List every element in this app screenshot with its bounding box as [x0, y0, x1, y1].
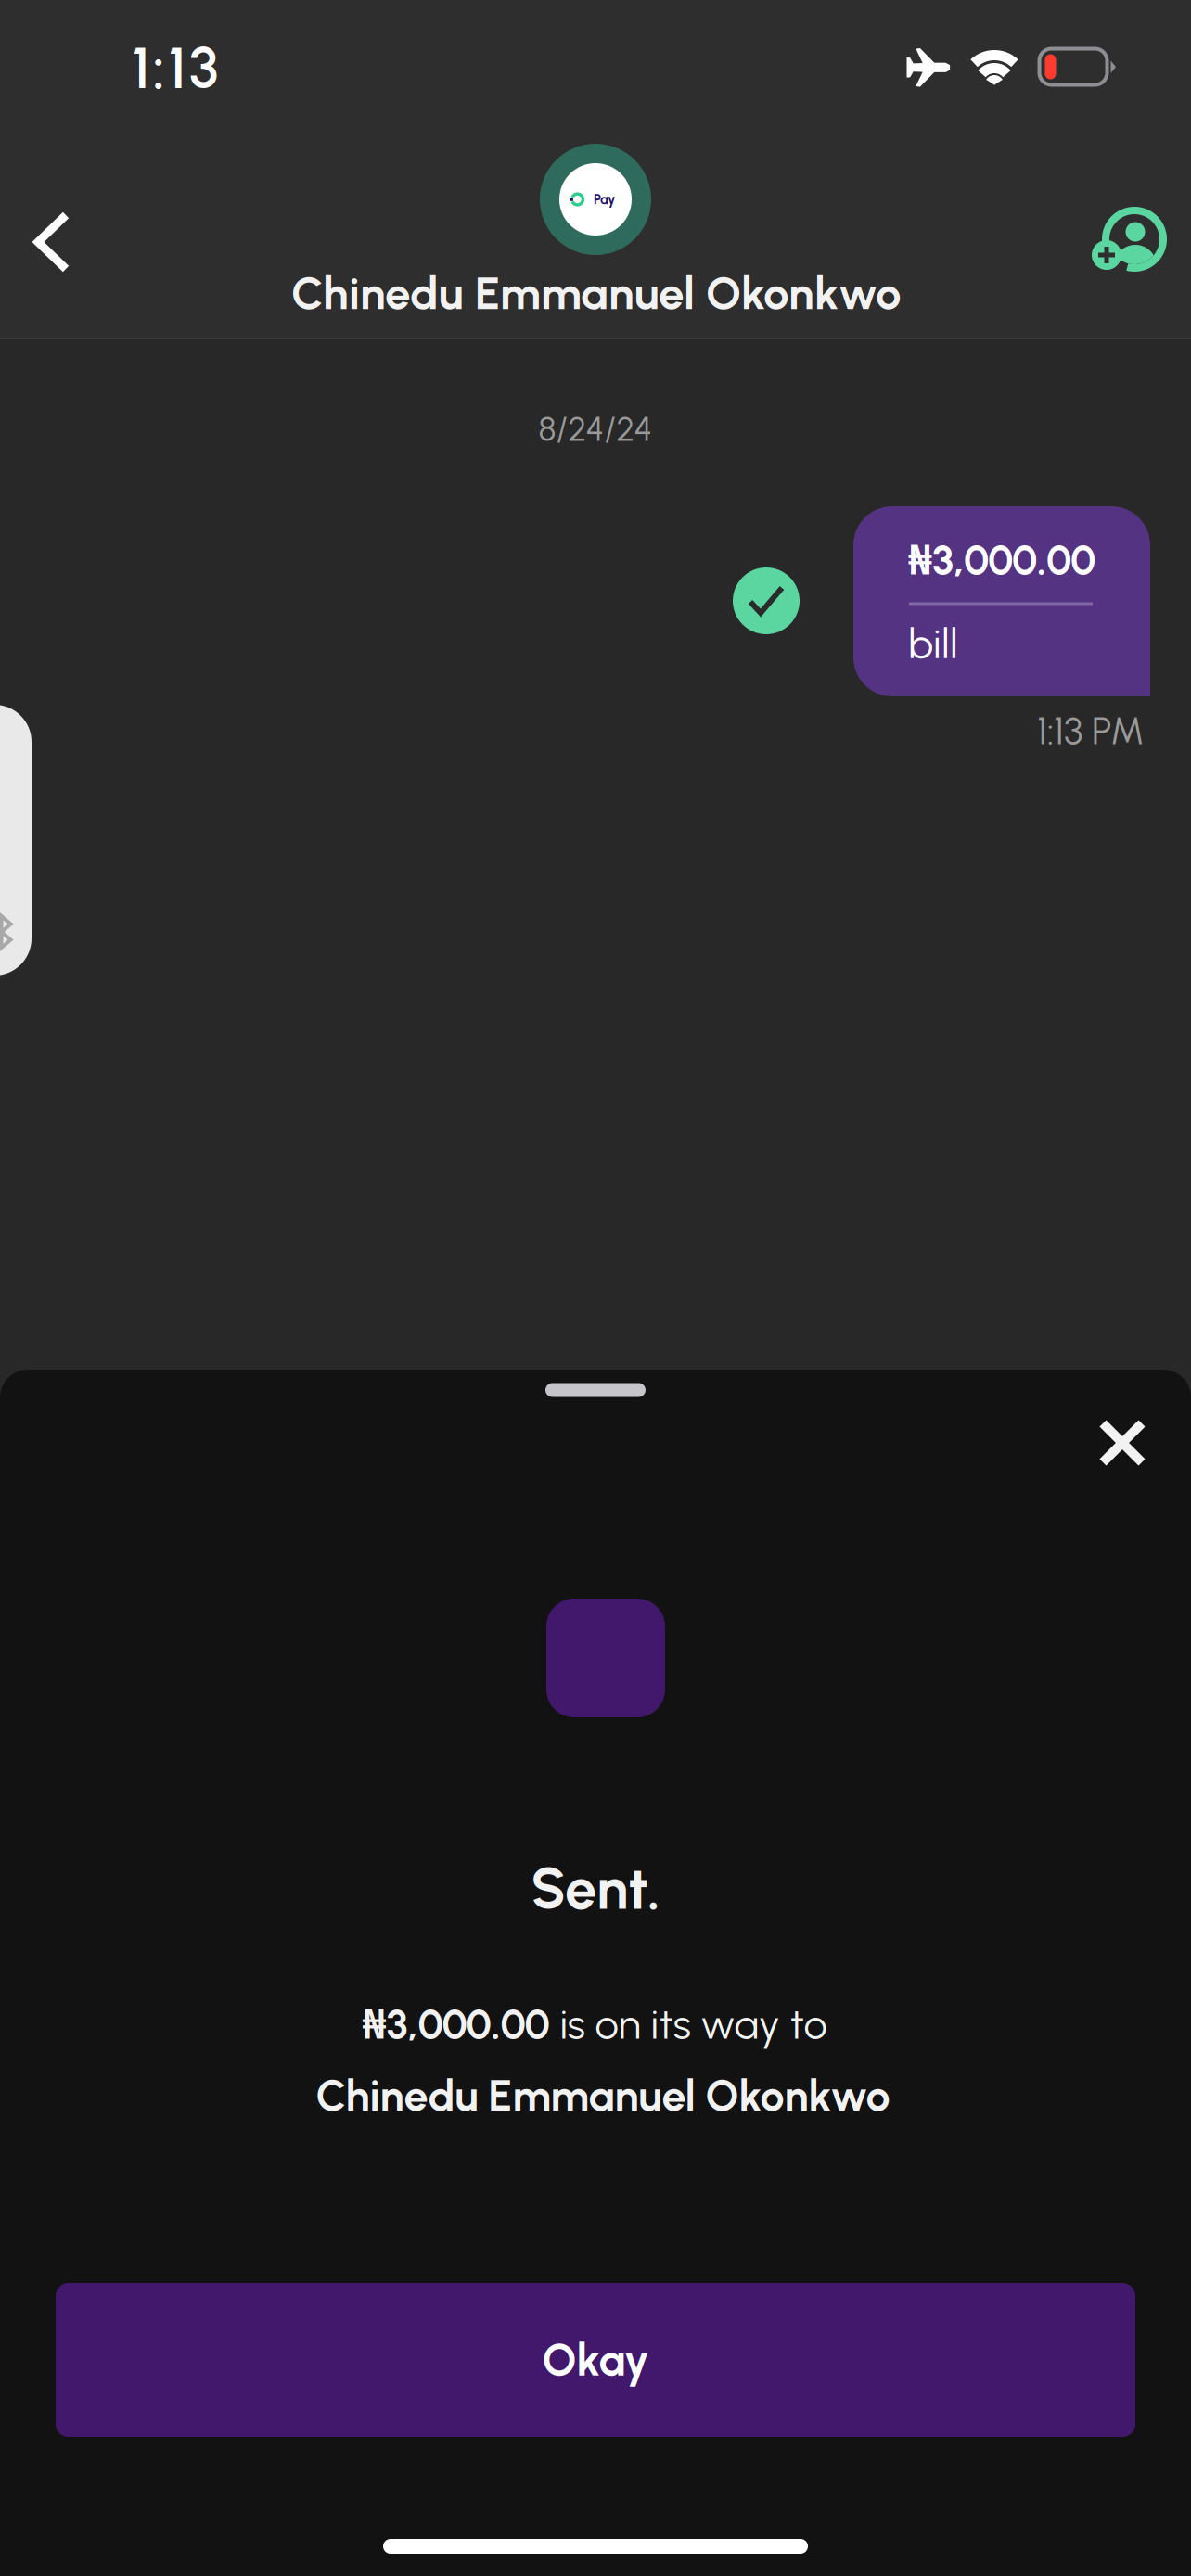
- button[interactable]: Add contact: [1073, 186, 1185, 298]
- button[interactable]: Back: [0, 186, 108, 298]
- staticText: Chinedu Emmanuel Okonkwo: [291, 266, 902, 320]
- staticText: Sent.: [531, 1855, 660, 1923]
- staticText: 1:13 PM: [1037, 708, 1145, 754]
- button[interactable]: Okay: [56, 2283, 1135, 2437]
- staticText: 8/24/24: [538, 409, 653, 449]
- staticText: ₦3,000.00 is on its way to: [362, 1994, 827, 2050]
- staticText: Pay: [594, 191, 615, 208]
- staticText: ₦3,000.00: [908, 530, 1095, 587]
- staticText: Chinedu Emmanuel Okonkwo: [316, 2070, 890, 2122]
- button[interactable]: Close: [1076, 1396, 1169, 1489]
- staticText: 1:13: [132, 33, 219, 103]
- staticText: bill: [908, 618, 958, 669]
- staticText: Okay: [542, 2333, 649, 2387]
